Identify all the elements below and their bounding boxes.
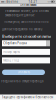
staticText: ●●●○○ xyxy=(1,1,6,2)
staticText: Защищено сертификатом безопасности xyxy=(1,95,53,99)
staticText: Оплатить xyxy=(17,70,29,74)
staticText: Пожалуйста, заполните все поля xyxy=(4,20,49,23)
button[interactable]: Номер карты xyxy=(2,49,50,55)
button[interactable]: Сбербанк России xyxy=(2,40,50,46)
staticText: заказа введите данные xyxy=(5,13,34,17)
staticText: 14:21 xyxy=(29,0,38,3)
staticText: Данные передаются по каналу xyxy=(2,27,42,31)
staticText: Номер карты xyxy=(3,50,20,54)
staticText: Месяц / Год xyxy=(3,59,19,62)
staticText: Уважаемый клиент, для оплаты xyxy=(5,9,49,13)
staticText: Оплата заказа xyxy=(20,3,36,7)
staticText: 62% xyxy=(48,1,51,3)
staticText: Beeline xyxy=(6,0,18,3)
staticText: Уведомлять о статусе перевода xyxy=(1,79,43,83)
staticText: Выберите способ оплаты xyxy=(2,34,51,39)
staticText: Сбербанк России xyxy=(3,41,27,45)
button[interactable]: Оплатить xyxy=(2,70,45,75)
button[interactable]: Месяц / Год xyxy=(2,57,50,63)
